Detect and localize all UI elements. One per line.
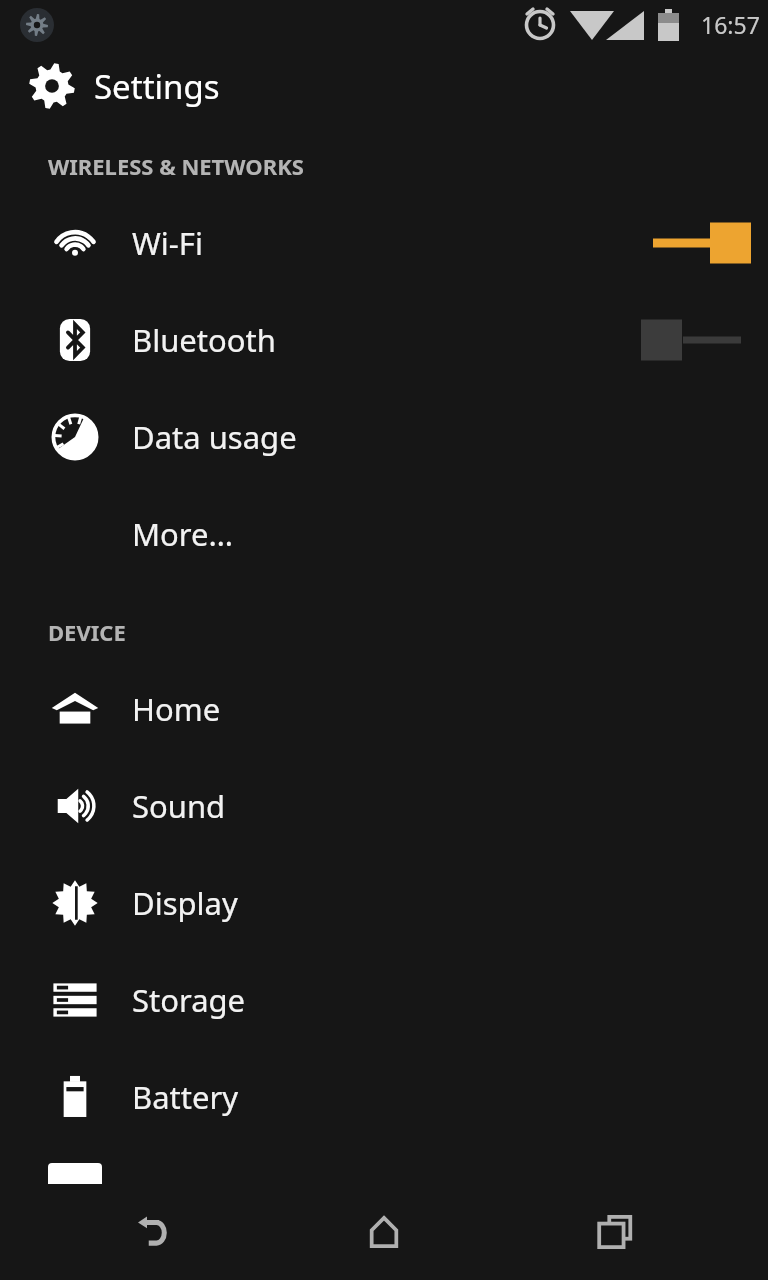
staticText: Wi-Fi <box>132 222 203 264</box>
staticText: 16:57 <box>701 9 760 40</box>
button[interactable]: Data usage <box>0 388 768 485</box>
button[interactable]: Home <box>304 1184 464 1280</box>
staticText: Storage <box>132 979 246 1021</box>
staticText: Battery <box>132 1076 239 1118</box>
staticText: Sound <box>132 785 226 827</box>
button[interactable]: Off <box>639 310 754 370</box>
staticText: Bluetooth <box>132 319 276 361</box>
button[interactable]: Recent apps <box>536 1184 696 1280</box>
staticText: More… <box>132 513 234 555</box>
staticText: DEVICE <box>48 617 126 647</box>
button[interactable]: Wi-Fi <box>0 194 768 291</box>
button[interactable]: Bluetooth <box>0 291 768 388</box>
button[interactable]: Settings <box>0 48 768 124</box>
staticText: Data usage <box>132 416 297 458</box>
button[interactable]: Back <box>72 1184 232 1280</box>
button[interactable]: Display <box>0 854 768 951</box>
staticText: Home <box>132 688 221 730</box>
staticText: Display <box>132 882 238 924</box>
button[interactable]: Home <box>0 660 768 757</box>
staticText: WIRELESS & NETWORKS <box>48 151 304 181</box>
button[interactable]: Storage <box>0 951 768 1048</box>
button[interactable]: More… <box>0 485 768 582</box>
button[interactable]: Battery <box>0 1048 768 1145</box>
staticText: Settings <box>94 64 220 109</box>
button[interactable]: On <box>639 213 754 273</box>
button[interactable]: Sound <box>0 757 768 854</box>
